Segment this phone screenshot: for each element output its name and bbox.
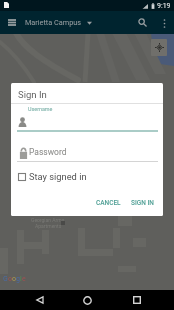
button[interactable]: CANCEL bbox=[93, 196, 124, 210]
button[interactable]: SIGN IN bbox=[128, 196, 157, 210]
button[interactable]: My location bbox=[151, 39, 167, 56]
staticText: Username bbox=[28, 106, 53, 112]
staticText: Password bbox=[29, 147, 67, 157]
button[interactable]: Home bbox=[80, 290, 94, 310]
button[interactable]: Menu bbox=[0, 11, 24, 34]
button[interactable]: Search bbox=[131, 11, 154, 34]
staticText: Georgian Arms bbox=[31, 217, 65, 223]
staticText: o bbox=[8, 275, 12, 283]
staticText: SIGN IN bbox=[131, 199, 154, 207]
staticText: o bbox=[12, 275, 16, 283]
staticText: 9:19 bbox=[157, 2, 171, 10]
button[interactable]: More options bbox=[154, 13, 174, 33]
button[interactable]: Stay signed in bbox=[18, 171, 87, 182]
staticText: Marietta Campus bbox=[25, 18, 82, 27]
staticText: Sign In bbox=[18, 89, 47, 100]
button[interactable]: Recents bbox=[130, 290, 144, 310]
staticText: g bbox=[16, 275, 20, 283]
staticText: CANCEL bbox=[96, 199, 121, 207]
staticText: G bbox=[3, 275, 8, 283]
staticText: Apartments bbox=[35, 223, 62, 229]
button[interactable]: Back bbox=[32, 290, 46, 310]
staticText: l bbox=[20, 275, 22, 283]
staticText: e bbox=[22, 275, 26, 283]
staticText: Stay signed in bbox=[29, 171, 87, 182]
